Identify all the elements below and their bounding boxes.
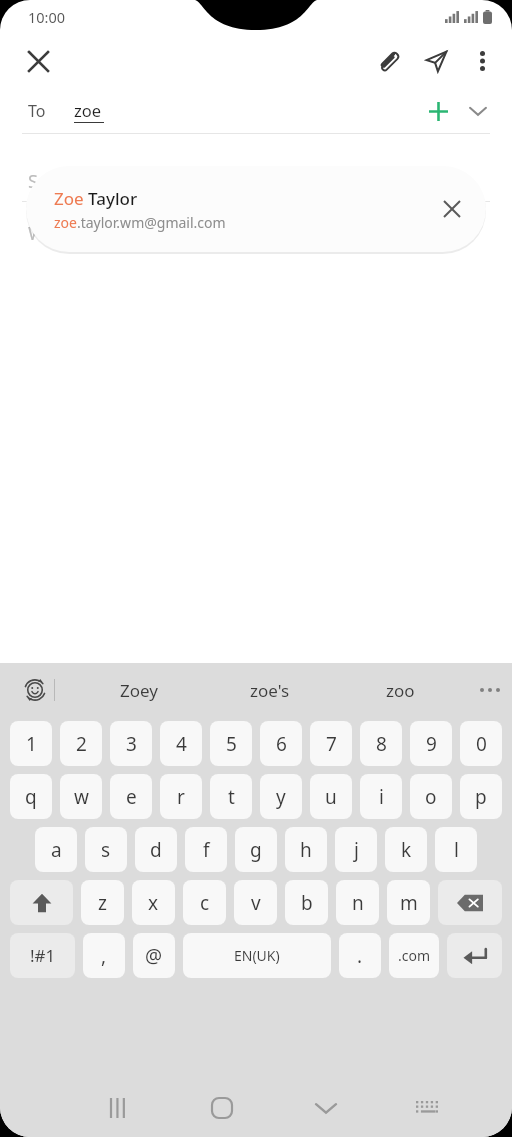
staticText: zoe.taylor.wm@gmail.com bbox=[54, 213, 226, 232]
staticText: Zoe Taylor bbox=[54, 187, 138, 210]
staticText: Zoey bbox=[120, 679, 158, 702]
staticText: @ bbox=[145, 943, 163, 969]
button[interactable]: 0 bbox=[460, 721, 502, 766]
button[interactable]: @ bbox=[133, 933, 175, 978]
button[interactable]: Zoey bbox=[74, 663, 204, 717]
button[interactable]: i bbox=[360, 774, 402, 819]
button[interactable]: 2 bbox=[60, 721, 102, 766]
staticText: . bbox=[357, 943, 363, 969]
button[interactable]: o bbox=[410, 774, 452, 819]
staticText: m bbox=[400, 890, 418, 916]
staticText: , bbox=[101, 943, 107, 969]
button[interactable]: 1 bbox=[10, 721, 52, 766]
button[interactable]: Recents bbox=[91, 1080, 147, 1136]
staticText: w bbox=[74, 784, 89, 810]
button[interactable]: Emoji and more bbox=[16, 671, 54, 709]
button[interactable]: 3 bbox=[110, 721, 152, 766]
staticText: s bbox=[101, 837, 111, 863]
button[interactable]: y bbox=[260, 774, 302, 819]
staticText: 10:00 bbox=[28, 7, 66, 27]
button[interactable]: Hide keyboard bbox=[298, 1080, 354, 1136]
staticText: .com bbox=[398, 946, 431, 965]
button[interactable]: 5 bbox=[210, 721, 252, 766]
staticText: EN(UK) bbox=[234, 946, 280, 965]
button[interactable]: More options bbox=[460, 39, 504, 83]
button[interactable]: More suggestions bbox=[468, 668, 512, 712]
staticText: x bbox=[148, 890, 159, 916]
button[interactable]: !#1 bbox=[10, 933, 75, 978]
button[interactable]: h bbox=[285, 827, 327, 872]
button[interactable]: Home bbox=[194, 1080, 250, 1136]
button[interactable]: s bbox=[85, 827, 127, 872]
staticText: f bbox=[203, 837, 210, 863]
button[interactable]: 8 bbox=[360, 721, 402, 766]
staticText: zoo bbox=[386, 679, 415, 702]
staticText: a bbox=[51, 837, 62, 863]
button[interactable]: u bbox=[310, 774, 352, 819]
button[interactable]: a bbox=[35, 827, 77, 872]
staticText: k bbox=[401, 837, 412, 863]
staticText: 1 bbox=[26, 731, 37, 757]
button[interactable]: k bbox=[385, 827, 427, 872]
button[interactable]: t bbox=[210, 774, 252, 819]
button[interactable]: 4 bbox=[160, 721, 202, 766]
button[interactable]: b bbox=[285, 880, 328, 925]
button[interactable]: l bbox=[435, 827, 477, 872]
staticText: g bbox=[250, 837, 262, 863]
button[interactable]: Zoe Taylor bbox=[26, 166, 486, 252]
button[interactable]: , bbox=[83, 933, 125, 978]
button[interactable]: d bbox=[135, 827, 177, 872]
button[interactable]: Show Cc and Bcc bbox=[458, 91, 498, 131]
staticText: i bbox=[379, 784, 384, 810]
button[interactable]: Shift bbox=[10, 880, 73, 925]
button[interactable]: v bbox=[234, 880, 277, 925]
button[interactable]: .com bbox=[389, 933, 439, 978]
button[interactable]: c bbox=[183, 880, 226, 925]
button[interactable]: 6 bbox=[260, 721, 302, 766]
button[interactable]: Dismiss suggestion bbox=[426, 183, 478, 235]
button[interactable]: j bbox=[335, 827, 377, 872]
staticText: 3 bbox=[126, 731, 137, 757]
button[interactable]: e bbox=[110, 774, 152, 819]
staticText: z bbox=[98, 890, 107, 916]
button[interactable]: q bbox=[10, 774, 52, 819]
staticText: Write email bbox=[28, 221, 125, 246]
staticText: d bbox=[150, 837, 162, 863]
button[interactable]: . bbox=[339, 933, 381, 978]
button[interactable]: Backspace bbox=[438, 880, 502, 925]
staticText: t bbox=[228, 784, 235, 810]
button[interactable]: p bbox=[460, 774, 502, 819]
button[interactable]: 7 bbox=[310, 721, 352, 766]
button[interactable]: m bbox=[387, 880, 430, 925]
button[interactable]: n bbox=[336, 880, 379, 925]
button[interactable]: Enter bbox=[447, 933, 502, 978]
staticText: c bbox=[200, 890, 210, 916]
staticText: 5 bbox=[226, 731, 237, 757]
staticText: zoe bbox=[74, 99, 102, 121]
button[interactable]: Attach file bbox=[364, 37, 412, 85]
button[interactable]: Send bbox=[412, 37, 460, 85]
button[interactable]: g bbox=[235, 827, 277, 872]
staticText: e bbox=[126, 784, 137, 810]
button[interactable]: r bbox=[160, 774, 202, 819]
staticText: u bbox=[325, 784, 337, 810]
button[interactable]: zoe's bbox=[204, 663, 335, 717]
button[interactable]: w bbox=[60, 774, 102, 819]
staticText: b bbox=[301, 890, 313, 916]
button[interactable]: f bbox=[185, 827, 227, 872]
staticText: l bbox=[454, 837, 459, 863]
staticText: 7 bbox=[326, 731, 337, 757]
staticText: p bbox=[475, 784, 487, 810]
button[interactable]: x bbox=[132, 880, 175, 925]
staticText: 6 bbox=[276, 731, 287, 757]
button[interactable]: z bbox=[81, 880, 124, 925]
staticText: Subject bbox=[28, 169, 91, 194]
button[interactable]: Change keyboard bbox=[401, 1082, 453, 1134]
button[interactable]: zoo bbox=[335, 663, 466, 717]
staticText: zoe's bbox=[250, 679, 290, 702]
button[interactable]: 9 bbox=[410, 721, 452, 766]
button[interactable]: EN(UK) bbox=[183, 933, 331, 978]
staticText: 2 bbox=[76, 731, 87, 757]
button[interactable]: Close bbox=[14, 37, 62, 85]
button[interactable]: Add recipient bbox=[418, 91, 458, 131]
